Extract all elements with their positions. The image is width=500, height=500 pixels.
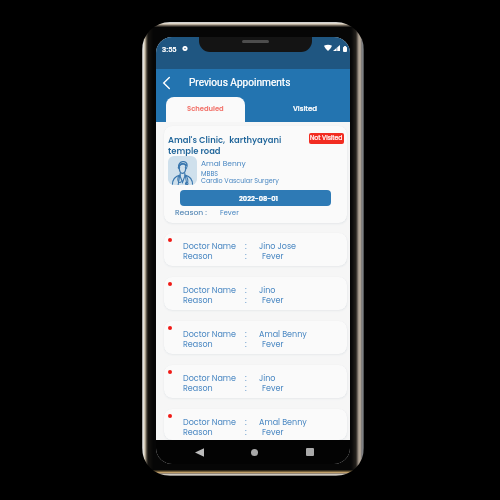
staticText: : [245,339,247,350]
staticText: : [245,241,247,252]
button[interactable]: Home [245,443,263,461]
button[interactable]: Doctor Name [164,409,347,440]
staticText: Doctor Name [183,329,237,340]
staticText: 3:55 [162,45,177,54]
staticText: Jino [259,285,276,296]
staticText: Jino [259,373,276,384]
button[interactable]: Back [157,73,175,93]
staticText: Jino Jose [259,241,297,252]
button[interactable]: Back [190,443,208,461]
staticText: Amal Benny [259,329,307,340]
staticText: Doctor Name [183,373,237,384]
button[interactable]: Scheduled [166,97,245,122]
staticText: Amal Benny [201,158,246,168]
staticText: Fever [262,339,284,350]
button[interactable]: Amal's Clinic, karthyayani temple road [164,126,347,223]
staticText: Reason : [175,207,207,218]
button[interactable]: Doctor Name [164,277,347,310]
staticText: Amal's Clinic, karthyayani temple road [168,134,282,157]
button[interactable]: Visited [245,97,350,122]
staticText: Fever [262,295,284,306]
button[interactable]: Doctor Name [164,365,347,398]
staticText: Fever [262,427,284,438]
staticText: : [245,373,247,384]
staticText: Amal Benny [259,417,307,428]
staticText: Visited [293,104,317,114]
staticText: Doctor Name [183,285,237,296]
staticText: 2022-08-01 [239,194,278,203]
staticText: Not Visited [310,134,343,143]
staticText: Fever [220,208,239,218]
staticText: : [245,417,247,428]
staticText: : [245,285,247,296]
staticText: : [245,329,247,340]
staticText: Reason [183,383,213,394]
staticText: Fever [262,251,284,262]
staticText: Doctor Name [183,241,237,252]
button[interactable]: Doctor Name [164,233,347,266]
staticText: Reason [183,427,213,438]
staticText: MBBS [201,169,219,178]
staticText: : [245,251,247,262]
staticText: Reason [183,295,213,306]
staticText: Reason [183,339,213,350]
button[interactable]: Recent apps [301,443,319,461]
staticText: Fever [262,383,284,394]
staticText: Doctor Name [183,417,237,428]
staticText: : [245,295,247,306]
button[interactable]: 2022-08-01 [180,190,331,206]
staticText: : [245,427,247,438]
button[interactable]: Doctor Name [164,321,347,354]
staticText: Cardio Vascular Surgery [201,176,279,185]
staticText: Scheduled [187,104,224,114]
staticText: : [245,383,247,394]
staticText: Previous Appoinments [189,77,291,89]
staticText: Reason [183,251,213,262]
